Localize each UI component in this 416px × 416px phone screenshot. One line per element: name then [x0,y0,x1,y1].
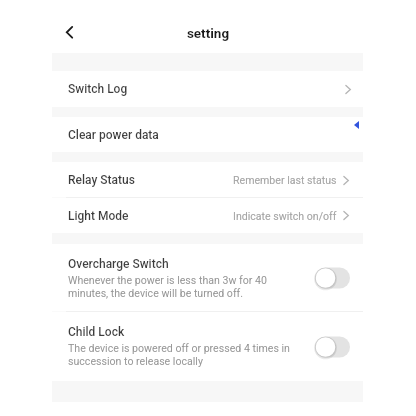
staticText: Child Lock [68,325,125,339]
button[interactable]: Switch Log [52,71,363,107]
staticText: Switch Log [68,82,128,96]
button[interactable]: Light Mode [52,198,363,233]
button[interactable]: Clear power data [52,117,363,152]
button[interactable]: Overcharge Switch [52,244,363,312]
staticText: Whenever the power is less than 3w for 4… [68,274,267,300]
staticText: Relay Status [68,173,135,187]
staticText: Overcharge Switch [68,257,169,271]
button[interactable]: Relay Status [52,162,363,198]
button[interactable]: Child Lock [52,312,363,381]
staticText: setting [0,25,416,41]
staticText: Clear power data [68,128,159,142]
button[interactable]: Back [53,16,85,48]
staticText: Remember last status [233,174,337,186]
staticText: The device is powered off or pressed 4 t… [68,342,290,368]
staticText: Indicate switch on/off [233,210,337,222]
staticText: Light Mode [68,209,129,223]
